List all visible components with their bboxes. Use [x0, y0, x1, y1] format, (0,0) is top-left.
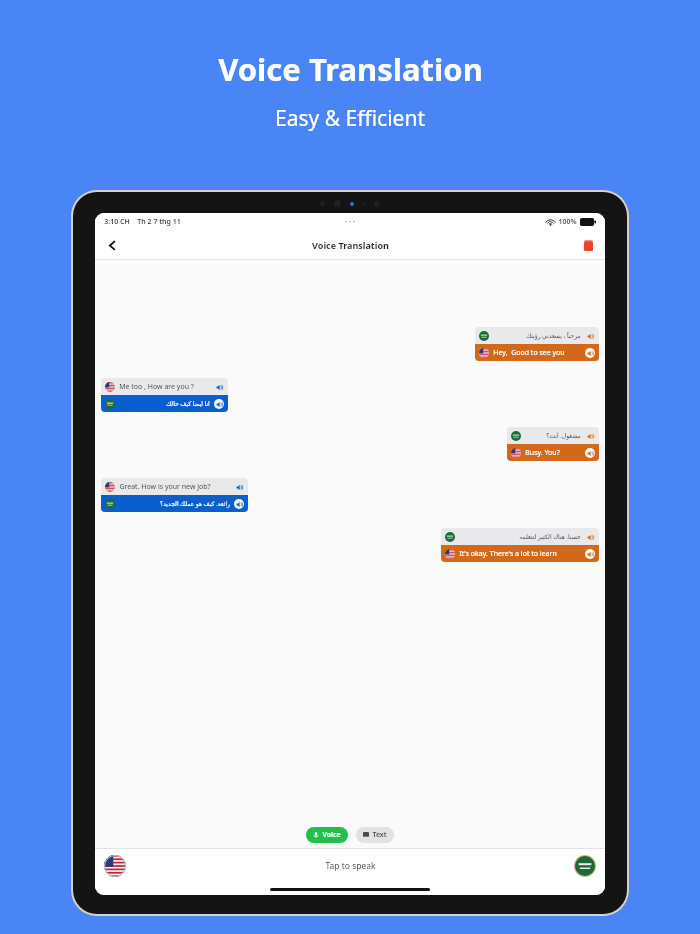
- staticText: Great. How is your new job?: [119, 482, 211, 492]
- staticText: It's okay. There's a lot to learn: [459, 549, 557, 559]
- staticText: Easy & Efficient: [275, 104, 425, 133]
- staticText: Voice: [322, 830, 341, 840]
- button[interactable]: Source language: English: [104, 855, 126, 877]
- button[interactable]: Target language: Arabic: [575, 856, 595, 876]
- button[interactable]: Play audio: [214, 382, 224, 392]
- staticText: Tap to speak: [325, 860, 376, 872]
- button[interactable]: Play audio: [585, 431, 595, 441]
- button[interactable]: Play audio: [234, 482, 244, 492]
- button[interactable]: Play audio: [585, 331, 595, 341]
- staticText: Me too , How are you ?: [119, 382, 194, 392]
- staticText: انا ايضا كيف حالك: [166, 400, 210, 408]
- button[interactable]: Me too , How are you ?: [101, 378, 228, 412]
- staticText: Busy. You?: [525, 448, 560, 458]
- button[interactable]: مرحباً ، يسعدني رؤيتك: [475, 327, 599, 361]
- staticText: • • •: [345, 218, 355, 226]
- staticText: مشغول. أنت؟: [546, 432, 581, 440]
- button[interactable]: Play audio: [585, 448, 595, 458]
- staticText: Th 2 7 thg 11: [137, 217, 181, 227]
- button[interactable]: Play audio: [585, 348, 595, 358]
- button[interactable]: Delete conversation: [576, 233, 600, 257]
- staticText: مرحباً ، يسعدني رؤيتك: [526, 332, 581, 340]
- button[interactable]: مشغول. أنت؟: [507, 427, 599, 461]
- button[interactable]: Play audio: [585, 532, 595, 542]
- staticText: 3:10 CH: [104, 217, 130, 227]
- staticText: Text: [372, 830, 387, 840]
- button[interactable]: Play audio: [585, 549, 595, 559]
- staticText: Hey, Good to see you: [493, 348, 565, 358]
- button[interactable]: Voice: [306, 827, 348, 843]
- button[interactable]: Play audio: [234, 499, 244, 509]
- staticText: Voice Translation: [312, 239, 389, 251]
- staticText: Voice Translation: [218, 48, 483, 90]
- button[interactable]: حسنا. هناك الكثير لتتعلمه: [441, 528, 599, 562]
- button[interactable]: Play audio: [214, 399, 224, 409]
- staticText: رائعة. كيف هو عملك الجديد؟: [160, 500, 230, 508]
- staticText: 100%: [558, 217, 577, 227]
- button[interactable]: Great. How is your new job?: [101, 478, 248, 512]
- staticText: حسنا. هناك الكثير لتتعلمه: [519, 533, 581, 541]
- button[interactable]: Back: [99, 232, 125, 258]
- button[interactable]: Text: [356, 827, 394, 843]
